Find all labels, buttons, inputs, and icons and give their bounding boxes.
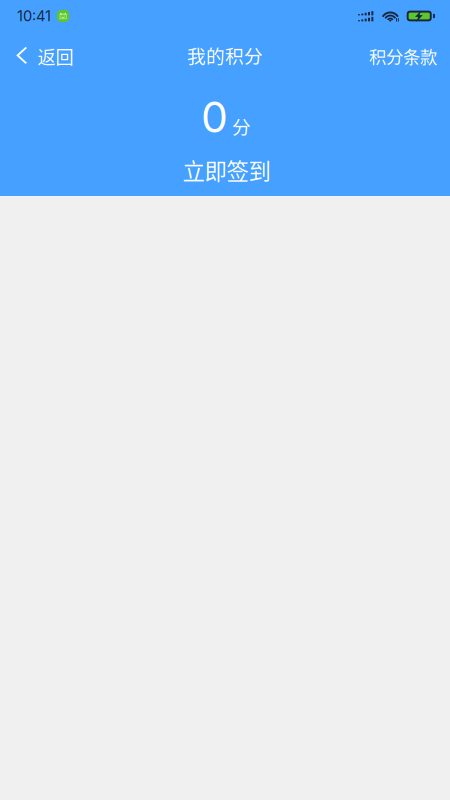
staticText: 返回 <box>37 43 73 69</box>
button[interactable]: 积分条款 <box>355 34 450 78</box>
staticText: 我的积分 <box>187 41 263 68</box>
staticText: 积分条款 <box>369 43 437 69</box>
staticText: 10:41 <box>17 7 51 25</box>
button[interactable]: 立即签到 <box>1 155 450 185</box>
button[interactable]: 返回 <box>0 34 87 78</box>
staticText: 0 <box>201 91 228 143</box>
staticText: 立即签到 <box>182 154 270 186</box>
staticText: 分 <box>232 112 251 139</box>
